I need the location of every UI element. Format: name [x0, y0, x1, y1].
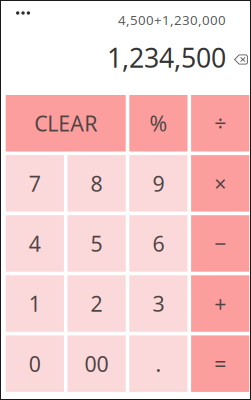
button[interactable]: ÷ — [191, 95, 249, 151]
button[interactable]: 0 — [6, 335, 64, 392]
staticText: 2 — [91, 289, 103, 318]
button[interactable]: + — [191, 275, 249, 332]
staticText: 0 — [29, 349, 41, 378]
staticText: + — [214, 289, 226, 318]
staticText: 4 — [29, 229, 41, 258]
staticText: . — [155, 349, 161, 378]
staticText: 1 — [29, 289, 41, 318]
staticText: 8 — [91, 169, 103, 197]
button[interactable]: 4 — [6, 215, 64, 272]
staticText: CLEAR — [34, 109, 97, 137]
button[interactable]: 9 — [129, 155, 187, 212]
button[interactable]: 3 — [129, 275, 187, 332]
staticText: = — [214, 349, 226, 378]
button[interactable]: Delete — [234, 54, 248, 65]
button[interactable]: 1 — [6, 275, 64, 332]
button[interactable]: − — [191, 215, 249, 272]
button[interactable]: % — [129, 95, 187, 151]
button[interactable]: 6 — [129, 215, 187, 272]
button[interactable]: 8 — [67, 155, 126, 212]
staticText: 6 — [152, 229, 164, 258]
button[interactable]: CLEAR — [6, 95, 126, 151]
staticText: − — [214, 229, 226, 258]
staticText: 9 — [152, 169, 164, 197]
staticText: 00 — [85, 349, 109, 378]
staticText: ÷ — [214, 109, 226, 137]
button[interactable]: 2 — [67, 275, 126, 332]
button[interactable]: . — [129, 335, 187, 392]
button[interactable]: 00 — [67, 335, 126, 392]
button[interactable]: 5 — [67, 215, 126, 272]
staticText: × — [214, 169, 226, 197]
button[interactable]: 7 — [6, 155, 64, 212]
button[interactable]: More options — [0, 0, 52, 24]
staticText: 3 — [152, 289, 164, 318]
staticText: % — [149, 109, 167, 137]
staticText: 5 — [91, 229, 103, 258]
staticText: 4,500+1,230,000 — [118, 11, 226, 29]
staticText: 1,234,500 — [107, 40, 226, 75]
button[interactable]: = — [191, 335, 249, 392]
button[interactable]: × — [191, 155, 249, 212]
staticText: 7 — [29, 169, 41, 197]
